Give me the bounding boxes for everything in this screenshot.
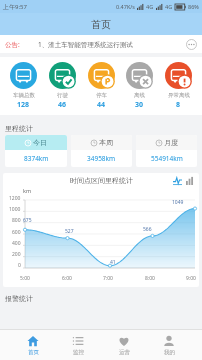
staticText: 里程统计 <box>5 124 33 133</box>
staticText: 停车 <box>96 92 107 99</box>
staticText: 86% <box>188 3 199 10</box>
staticText: 今日 <box>33 138 47 147</box>
button[interactable]: 运营 <box>112 333 136 358</box>
button[interactable]: 行驶 <box>47 62 78 110</box>
staticText: 4G <box>165 3 173 10</box>
staticText: 8 <box>176 100 181 110</box>
staticText: 400 <box>12 240 21 247</box>
button[interactable]: 今日 <box>5 135 67 167</box>
staticText: 527 <box>65 228 74 235</box>
button[interactable]: 异常离线 <box>163 62 194 110</box>
staticText: 报警统计 <box>5 294 33 303</box>
staticText: 首页 <box>91 18 111 31</box>
staticText: 1、渣土车智能管理系统运行测试 <box>38 40 133 49</box>
button[interactable]: Line chart <box>173 176 182 185</box>
button[interactable]: 首页 <box>21 333 45 358</box>
staticText: 800 <box>12 217 21 224</box>
button[interactable]: 停车 <box>86 62 117 110</box>
staticText: 运营 <box>119 349 130 356</box>
staticText: 5:00 <box>20 275 32 282</box>
staticText: 566 <box>143 226 152 233</box>
staticText: 600 <box>12 229 21 236</box>
staticText: 554914km <box>151 154 183 163</box>
staticText: 30 <box>135 100 144 110</box>
other: More notices <box>186 39 197 50</box>
staticText: 1000 <box>9 206 21 213</box>
staticText: 128 <box>17 100 30 110</box>
staticText: 离线 <box>134 92 145 99</box>
button[interactable]: 离线 <box>124 62 155 110</box>
staticText: 41 <box>110 259 116 266</box>
staticText: 首页 <box>28 349 39 356</box>
staticText: 0.47K/s <box>116 3 135 10</box>
button[interactable]: 我的 <box>157 333 181 358</box>
staticText: 1200 <box>9 195 21 202</box>
staticText: 200 <box>12 251 21 258</box>
staticText: km <box>23 187 32 194</box>
staticText: 9:00 <box>186 275 198 282</box>
staticText: 4G <box>146 3 154 10</box>
staticText: 车辆总数 <box>13 92 35 99</box>
staticText: 44 <box>97 100 106 110</box>
staticText: 异常离线 <box>168 92 190 99</box>
staticText: 我的 <box>164 349 175 356</box>
staticText: 8374km <box>24 154 49 163</box>
staticText: 上午9:57 <box>3 3 27 11</box>
button[interactable]: 月度 <box>136 135 197 167</box>
staticText: 8:00 <box>145 275 157 282</box>
button[interactable]: 本周 <box>71 135 132 167</box>
staticText: 监控 <box>73 349 84 356</box>
button[interactable]: 公告: <box>0 35 202 53</box>
button[interactable]: 车辆总数 <box>8 62 39 110</box>
button[interactable]: Bar chart <box>186 176 195 185</box>
staticText: 1049 <box>172 199 184 206</box>
staticText: 时间点区间里程统计 <box>70 176 133 185</box>
staticText: 公告: <box>5 40 20 49</box>
staticText: 6:00 <box>62 275 74 282</box>
staticText: 行驶 <box>57 92 68 99</box>
staticText: 0 <box>18 262 21 269</box>
staticText: 7:00 <box>103 275 115 282</box>
staticText: 46 <box>58 100 67 110</box>
staticText: 月度 <box>164 138 178 147</box>
staticText: 本周 <box>99 138 113 147</box>
button[interactable]: 监控 <box>66 333 90 358</box>
staticText: 675 <box>23 217 32 224</box>
staticText: 34958km <box>87 154 116 163</box>
